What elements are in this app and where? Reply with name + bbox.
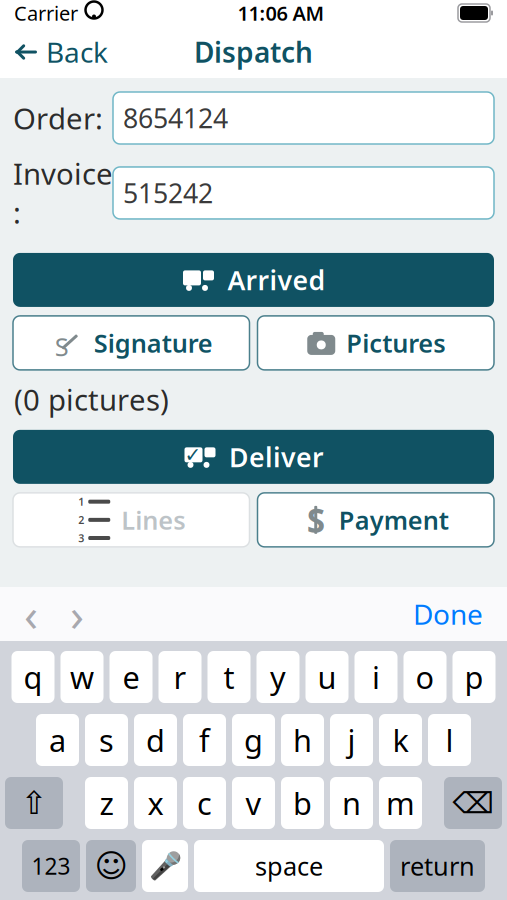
button[interactable]: k [379, 714, 422, 766]
button[interactable]: Shift [5, 777, 63, 829]
button[interactable]: y [256, 651, 299, 703]
staticText: t [223, 657, 234, 697]
staticText: i [372, 657, 380, 697]
button[interactable]: 123 [22, 840, 80, 892]
staticText: space [255, 849, 323, 883]
staticText: return [400, 849, 475, 883]
button[interactable]: Arrived [13, 253, 494, 307]
staticText: Order: [13, 98, 103, 137]
button[interactable]: q [11, 651, 54, 703]
staticText: 🎤 [148, 851, 181, 881]
button[interactable]: h [281, 714, 324, 766]
staticText: n [342, 783, 361, 823]
staticText: Carrier [14, 0, 78, 26]
staticText: Dispatch [194, 33, 313, 71]
button[interactable]: b [281, 777, 324, 829]
button[interactable]: e [109, 651, 152, 703]
button[interactable]: n [330, 777, 373, 829]
button[interactable]: p [452, 651, 495, 703]
button[interactable]: 1 [13, 493, 249, 547]
button[interactable]: o [403, 651, 446, 703]
staticText: u [317, 657, 336, 697]
button[interactable]: return [390, 840, 485, 892]
button[interactable]: m [379, 777, 422, 829]
button[interactable]: S [13, 316, 249, 370]
staticText: b [293, 783, 312, 823]
staticText: Back [46, 33, 108, 71]
staticText: S [307, 498, 325, 542]
button[interactable]: 515242 [113, 167, 494, 219]
staticText: f [199, 720, 210, 760]
staticText: g [244, 720, 263, 760]
button[interactable]: c [183, 777, 226, 829]
staticText: c [197, 783, 212, 823]
staticText: e [122, 657, 139, 697]
button[interactable]: Pictures [257, 316, 494, 370]
staticText: Pictures [346, 326, 445, 360]
staticText [78, 0, 84, 28]
staticText: Arrived [227, 262, 325, 298]
button[interactable]: s [85, 714, 128, 766]
button[interactable]: v [232, 777, 275, 829]
staticText: v [245, 783, 261, 823]
staticText: 2 [78, 513, 84, 527]
staticText: S [55, 330, 69, 363]
staticText: m [386, 783, 415, 823]
button[interactable]: w [60, 651, 103, 703]
staticText: d [146, 720, 165, 760]
staticText: k [392, 720, 408, 760]
staticText: › [70, 584, 84, 644]
button[interactable]: l [428, 714, 471, 766]
button[interactable]: r [158, 651, 201, 703]
button[interactable]: x [134, 777, 177, 829]
staticText: ✓ [184, 443, 201, 466]
staticText: Invoice: [13, 154, 113, 232]
button[interactable]: Previous field [8, 592, 54, 636]
button[interactable]: d [134, 714, 177, 766]
button[interactable]: Done [397, 592, 499, 636]
staticText: ‹ [24, 584, 38, 644]
staticText: ⌫ [452, 786, 493, 820]
staticText: w [70, 657, 94, 697]
button[interactable]: space [194, 840, 384, 892]
staticText: o [415, 657, 434, 697]
staticText: Deliver [229, 439, 324, 475]
button[interactable]: i [354, 651, 397, 703]
button[interactable]: Back [0, 30, 122, 74]
button[interactable]: Next field [54, 592, 100, 636]
button[interactable]: g [232, 714, 275, 766]
staticText: q [23, 657, 42, 697]
staticText: r [173, 657, 186, 697]
staticText: z [99, 783, 113, 823]
staticText: y [270, 657, 286, 697]
staticText: (0 pictures) [14, 380, 169, 419]
button[interactable]: t [207, 651, 250, 703]
staticText: x [147, 783, 163, 823]
button[interactable]: Delete [444, 777, 502, 829]
staticText: 515242 [123, 175, 213, 211]
staticText: 3 [78, 531, 84, 545]
button[interactable]: S [257, 493, 494, 547]
staticText: 1 [78, 495, 84, 509]
staticText: Signature [94, 326, 213, 360]
staticText: 8654124 [123, 100, 228, 136]
staticText: 11:06 AM [237, 0, 324, 26]
staticText: p [464, 657, 483, 697]
staticText: Payment [339, 503, 449, 537]
staticText: s [99, 720, 114, 760]
button[interactable]: u [305, 651, 348, 703]
button[interactable]: a [36, 714, 79, 766]
staticText: ☺ [94, 848, 127, 884]
staticText: a [49, 720, 66, 760]
button[interactable]: 8654124 [113, 92, 494, 144]
button[interactable]: ✓ [13, 430, 494, 484]
button[interactable]: Emoji [86, 840, 136, 892]
staticText: Done [413, 595, 483, 633]
button[interactable]: f [183, 714, 226, 766]
button[interactable]: Dictation [142, 840, 188, 892]
staticText: h [293, 720, 312, 760]
button[interactable]: j [330, 714, 373, 766]
staticText: ⇧ [20, 785, 47, 821]
staticText: l [445, 720, 453, 760]
button[interactable]: z [85, 777, 128, 829]
